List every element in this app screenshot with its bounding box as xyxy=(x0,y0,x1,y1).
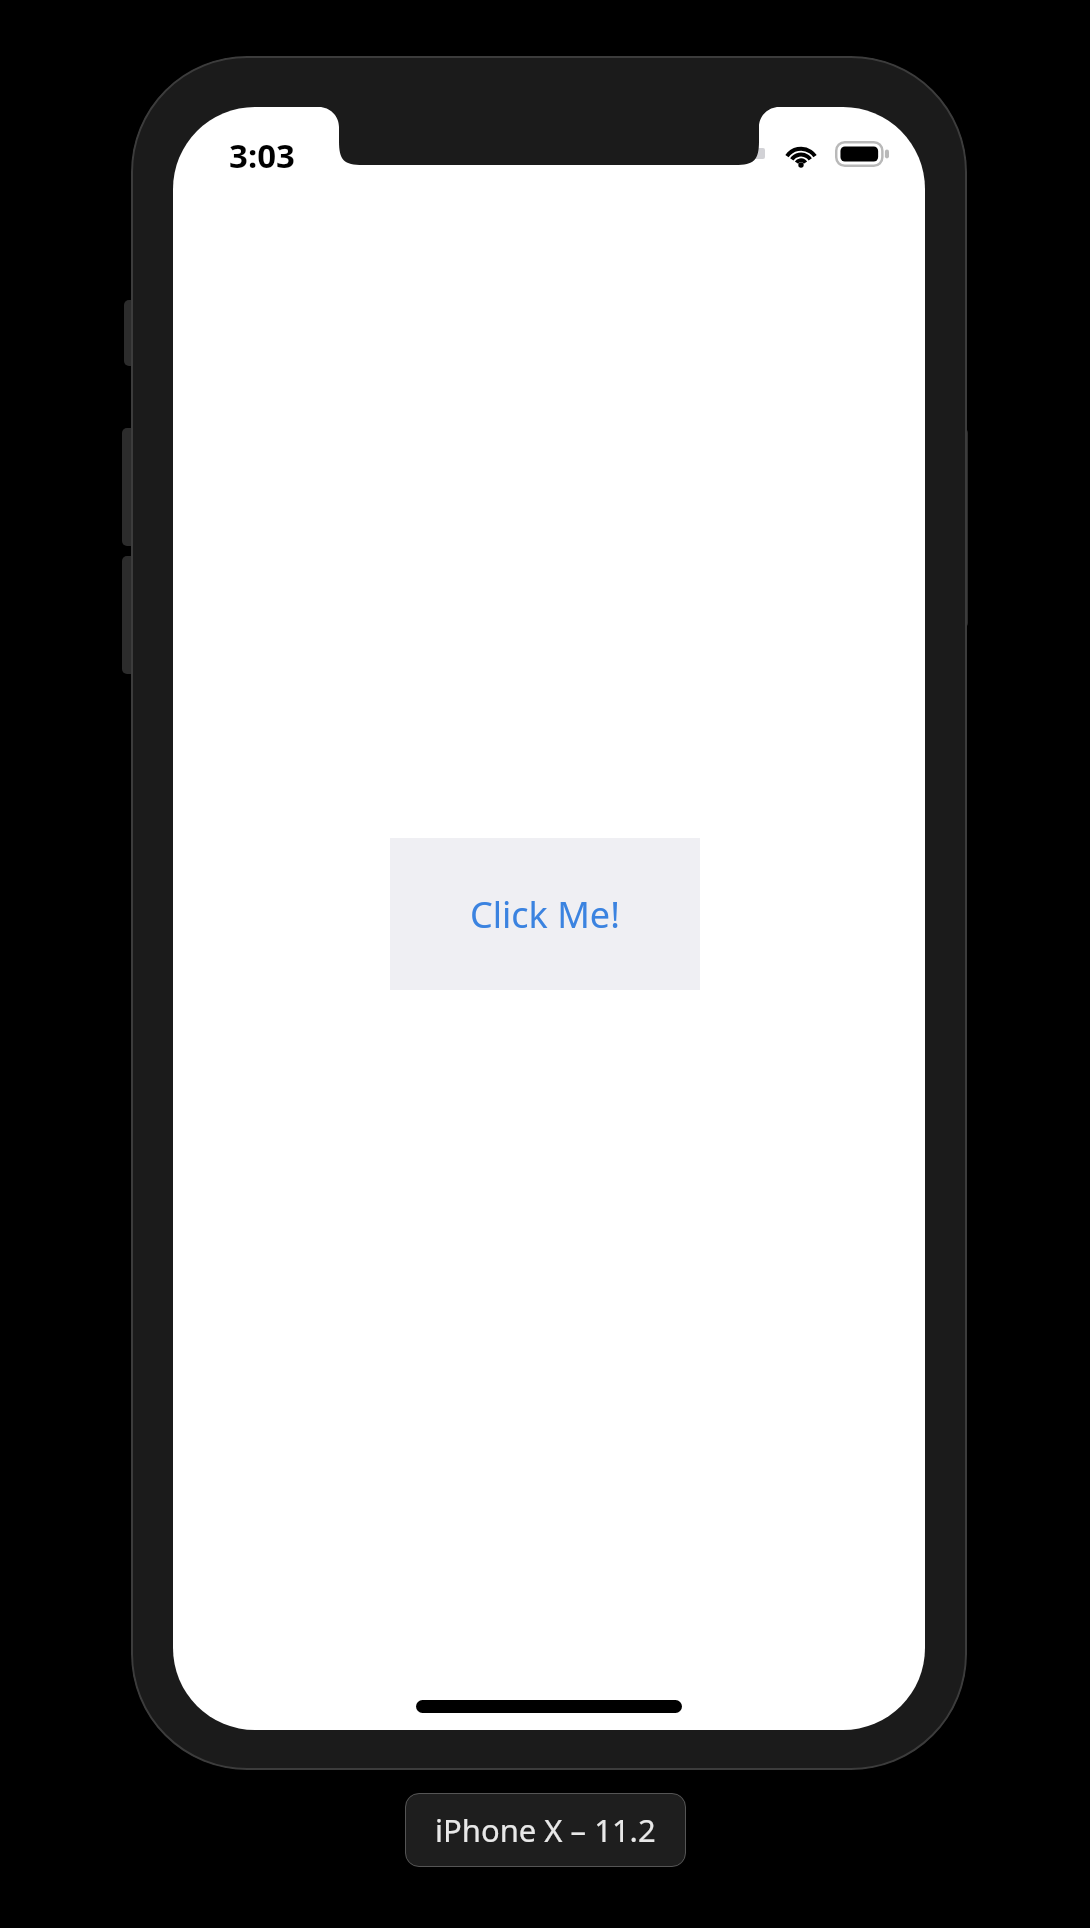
button[interactable]: iPhone X – 11.2 xyxy=(405,1793,686,1867)
staticText: 3:03 xyxy=(229,133,295,178)
button[interactable]: Click Me! xyxy=(390,838,700,990)
other: Cellular signal xyxy=(713,148,765,159)
other: Battery full xyxy=(835,141,889,167)
staticText: iPhone X – 11.2 xyxy=(435,1809,656,1851)
other: Wi-Fi xyxy=(783,140,819,167)
staticText: Click Me! xyxy=(470,890,620,939)
